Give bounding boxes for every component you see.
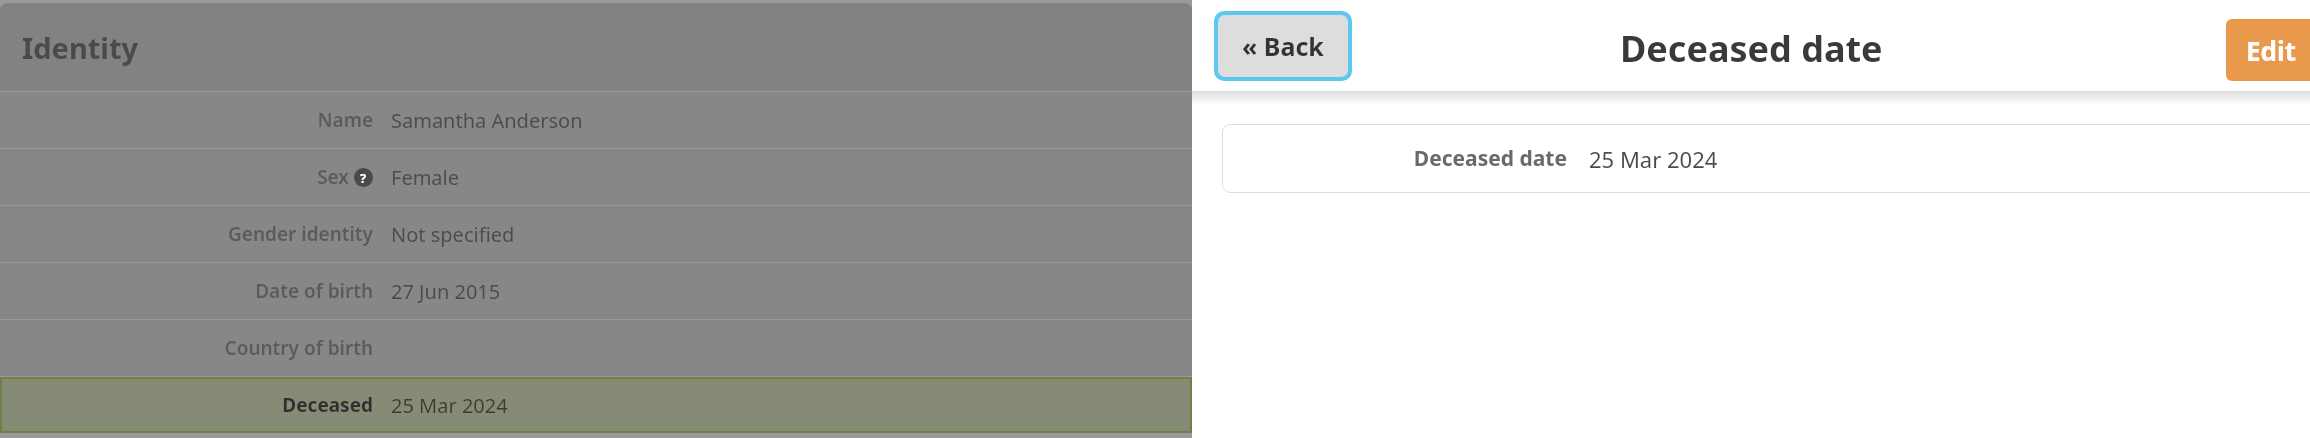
staticText: « Back [1242, 29, 1324, 63]
staticText: Not specified [391, 221, 515, 248]
staticText: Sex [317, 164, 349, 190]
button[interactable]: Gender identity [0, 206, 1192, 262]
staticText: Date of birth [255, 278, 373, 304]
button[interactable]: Country of birth [0, 320, 1192, 376]
button[interactable]: « Back [1218, 15, 1348, 77]
staticText: 25 Mar 2024 [1589, 144, 1718, 174]
staticText: Deceased date [1620, 24, 1883, 73]
staticText: ? [360, 169, 367, 187]
staticText: Name [317, 107, 373, 133]
staticText: Identity [22, 28, 139, 67]
staticText: Samantha Anderson [391, 107, 583, 134]
button[interactable]: Edit [2226, 19, 2310, 81]
staticText: 25 Mar 2024 [391, 392, 508, 419]
staticText: Gender identity [228, 221, 373, 247]
staticText: 27 Jun 2015 [391, 278, 501, 305]
button[interactable]: Name [0, 92, 1192, 148]
button[interactable]: Sex [0, 149, 1192, 205]
staticText: Female [391, 164, 460, 191]
button[interactable]: Deceased date [1222, 124, 2310, 193]
button[interactable]: Deceased [0, 377, 1192, 433]
staticText: Country of birth [224, 335, 373, 361]
staticText: Edit [2246, 33, 2297, 68]
button[interactable]: Help about Sex [354, 168, 373, 187]
staticText: Deceased date [1413, 144, 1567, 173]
button[interactable]: Date of birth [0, 263, 1192, 319]
staticText: Deceased [282, 392, 373, 418]
